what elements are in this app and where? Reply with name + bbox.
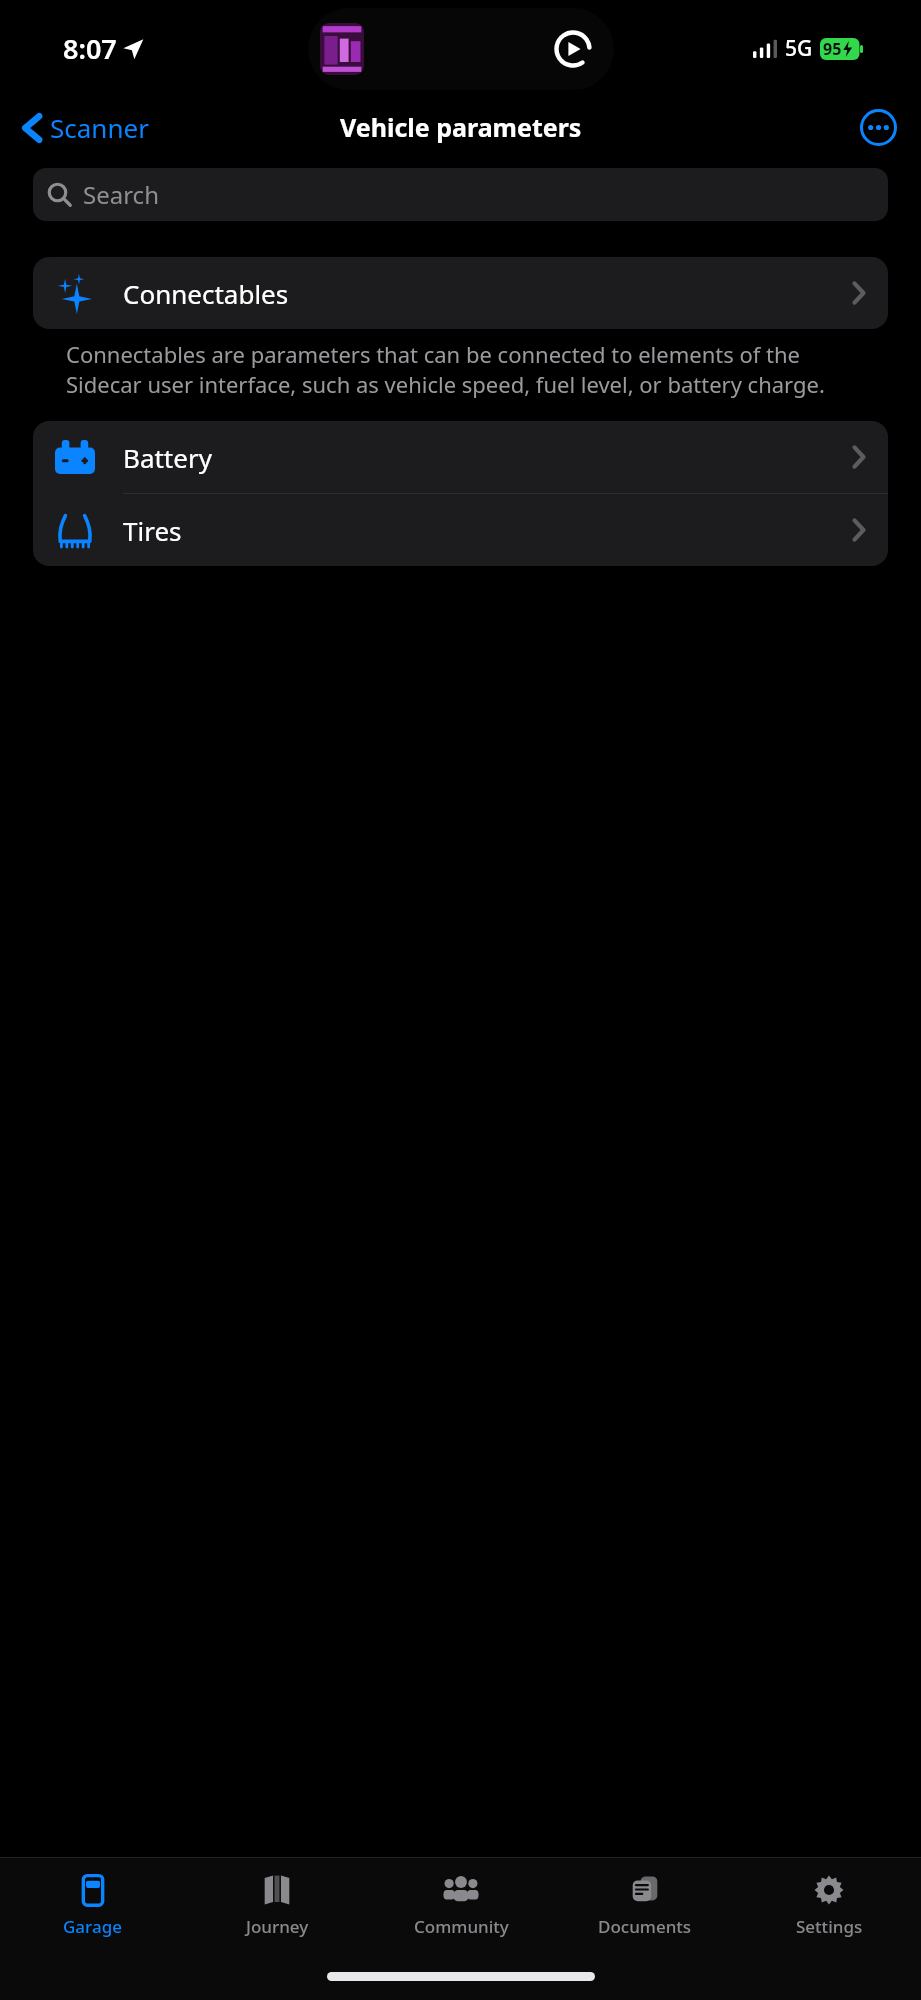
staticText: 95 bbox=[823, 38, 842, 60]
staticText: Documents bbox=[598, 1915, 692, 1938]
button[interactable]: Community bbox=[369, 1858, 553, 1966]
staticText: Tires bbox=[123, 513, 182, 548]
staticText: Connectables are parameters that can be … bbox=[66, 339, 855, 399]
staticText: Settings bbox=[796, 1915, 863, 1938]
staticText: Connectables bbox=[123, 276, 289, 311]
staticText: Community bbox=[414, 1915, 509, 1938]
button[interactable]: Garage bbox=[0, 1858, 185, 1966]
staticText: 5G bbox=[785, 34, 813, 63]
button[interactable]: Journey bbox=[185, 1858, 369, 1966]
button[interactable]: Connectables bbox=[33, 257, 888, 329]
staticText: 8:07 bbox=[63, 30, 117, 67]
button[interactable]: Documents bbox=[553, 1858, 737, 1966]
button[interactable]: Settings bbox=[737, 1858, 921, 1966]
staticText: Scanner bbox=[50, 110, 149, 145]
staticText: Garage bbox=[63, 1915, 122, 1938]
button[interactable]: Tires bbox=[33, 494, 888, 566]
button[interactable]: Battery bbox=[33, 421, 888, 493]
staticText: Vehicle parameters bbox=[340, 110, 582, 144]
button[interactable]: Search bbox=[33, 168, 888, 221]
staticText: Journey bbox=[246, 1915, 309, 1938]
staticText: Battery bbox=[123, 440, 212, 475]
staticText: Search bbox=[83, 178, 159, 211]
button[interactable]: Scanner bbox=[0, 104, 159, 151]
button[interactable]: More options bbox=[855, 104, 901, 150]
